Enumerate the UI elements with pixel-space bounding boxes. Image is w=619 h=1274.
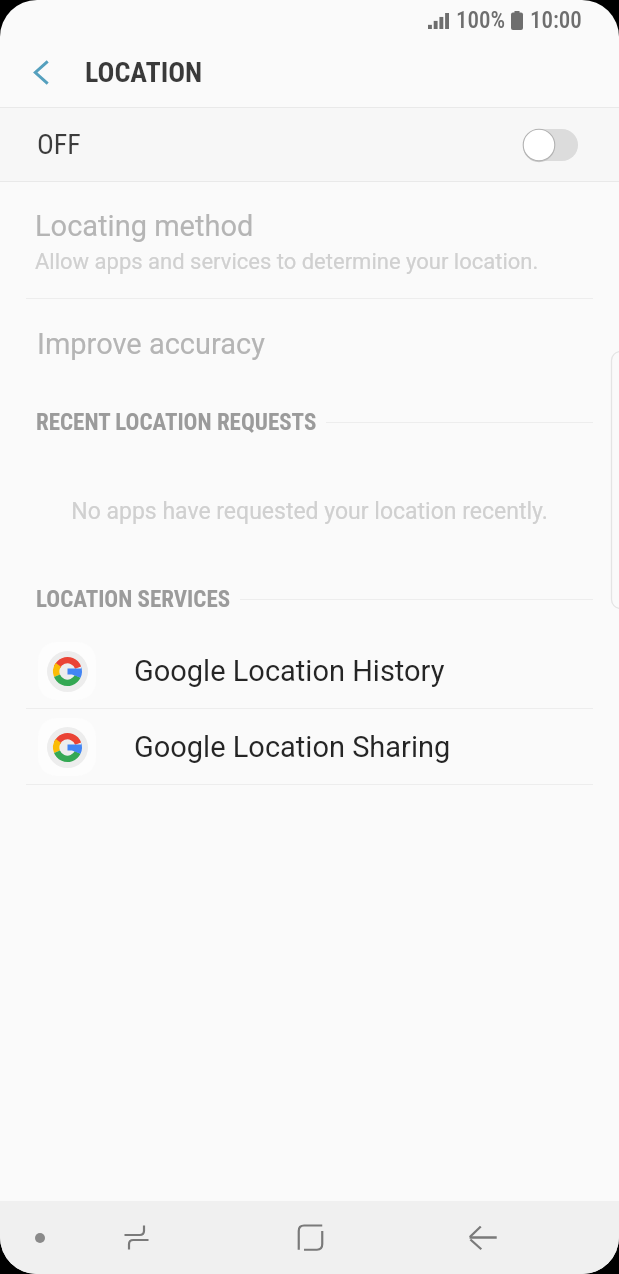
staticText: Google Location Sharing — [134, 730, 451, 764]
button[interactable]: Improve accuracy — [0, 300, 619, 388]
staticText: 100% — [456, 7, 506, 34]
staticText: Google Location History — [134, 654, 445, 688]
staticText: No apps have requested your location rec… — [71, 498, 548, 525]
button[interactable]: Home — [264, 1201, 357, 1274]
staticText: Locating method — [35, 209, 254, 243]
staticText: LOCATION SERVICES — [36, 586, 231, 613]
staticText: Improve accuracy — [37, 327, 265, 361]
staticText: LOCATION — [85, 56, 203, 89]
button[interactable]: Google Location Sharing — [0, 709, 619, 785]
button[interactable]: Assistant — [9, 1201, 70, 1274]
button[interactable]: Locating method — [0, 185, 619, 298]
staticText: RECENT LOCATION REQUESTS — [36, 409, 317, 436]
staticText: OFF — [37, 128, 81, 161]
button[interactable]: Navigate up — [0, 44, 82, 107]
button[interactable]: Recent apps — [90, 1201, 183, 1274]
staticText: Allow apps and services to determine you… — [35, 249, 539, 275]
button[interactable]: OFF — [0, 108, 619, 181]
button[interactable]: Back — [436, 1201, 529, 1274]
button[interactable]: Google Location History — [0, 632, 619, 709]
staticText: 10:00 — [530, 7, 582, 34]
